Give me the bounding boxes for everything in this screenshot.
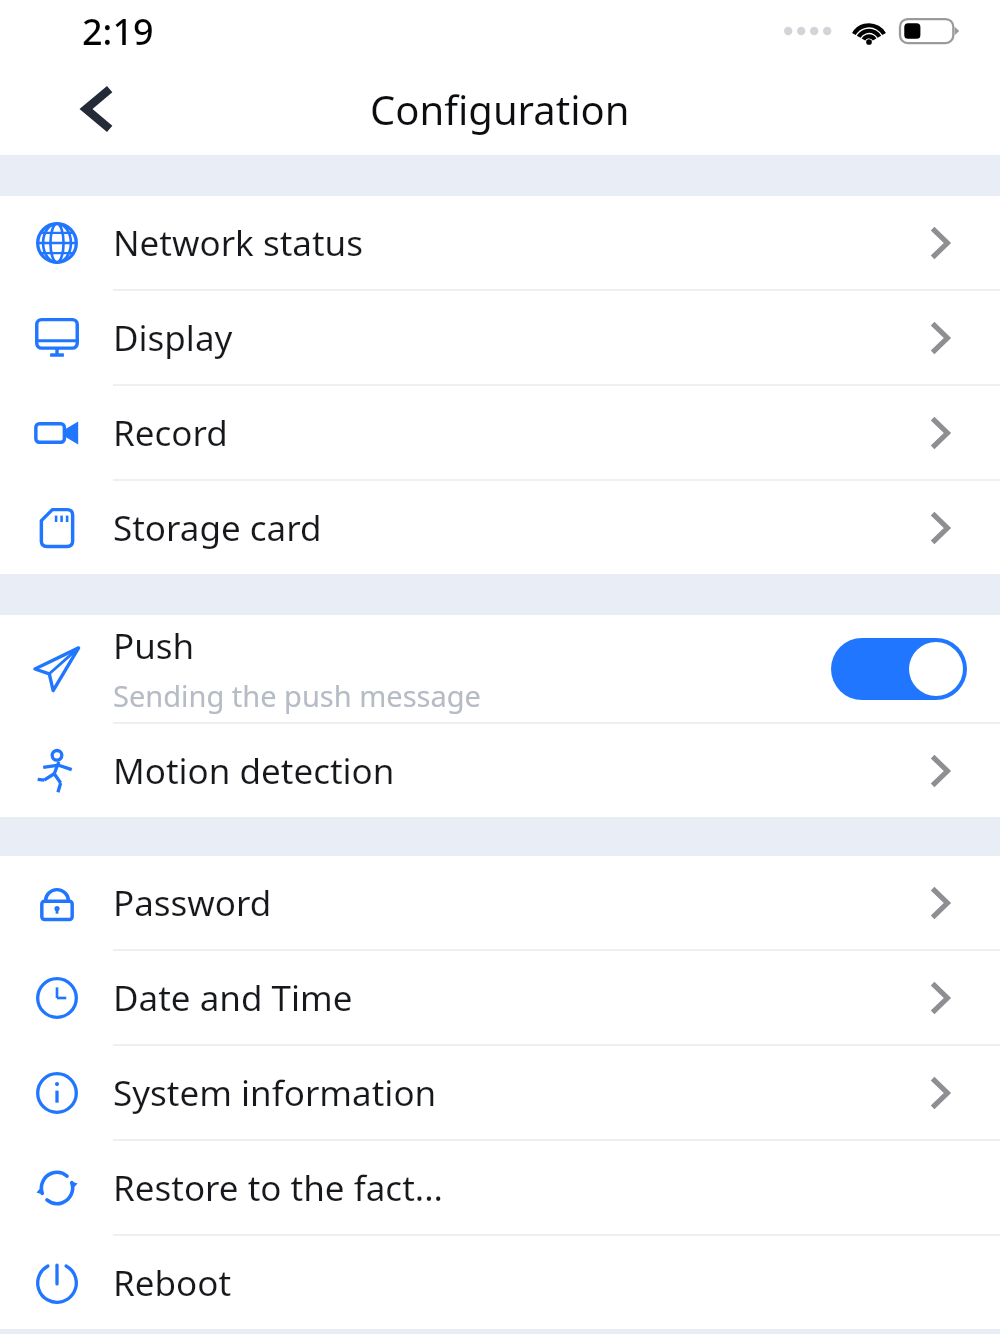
staticText: Motion detection (113, 747, 930, 795)
staticText: Display (113, 314, 930, 362)
staticText: 2:19 (82, 7, 154, 56)
button[interactable]: Network status (0, 196, 1000, 289)
staticText: Network status (113, 219, 930, 267)
staticText: Push (113, 622, 195, 670)
staticText: Record (113, 409, 930, 457)
button[interactable]: Password (0, 856, 1000, 949)
button[interactable]: Storage card (0, 481, 1000, 574)
button[interactable]: Push (0, 615, 1000, 722)
staticText: Sending the push message (113, 676, 481, 715)
staticText: Password (113, 879, 930, 927)
staticText: Date and Time (113, 974, 930, 1022)
staticText: Storage card (113, 504, 930, 552)
button[interactable]: Back (50, 62, 144, 155)
button[interactable]: Reboot (0, 1236, 1000, 1329)
button[interactable]: Date and Time (0, 951, 1000, 1044)
button[interactable]: Push toggle, on (831, 638, 967, 700)
button[interactable]: Restore to the fact... (0, 1141, 1000, 1234)
staticText: System information (113, 1069, 930, 1117)
button[interactable]: Record (0, 386, 1000, 479)
button[interactable]: Display (0, 291, 1000, 384)
button[interactable]: Motion detection (0, 724, 1000, 817)
button[interactable]: System information (0, 1046, 1000, 1139)
staticText: Configuration (370, 82, 630, 136)
staticText: Restore to the fact... (113, 1164, 930, 1212)
staticText: Reboot (113, 1259, 930, 1307)
